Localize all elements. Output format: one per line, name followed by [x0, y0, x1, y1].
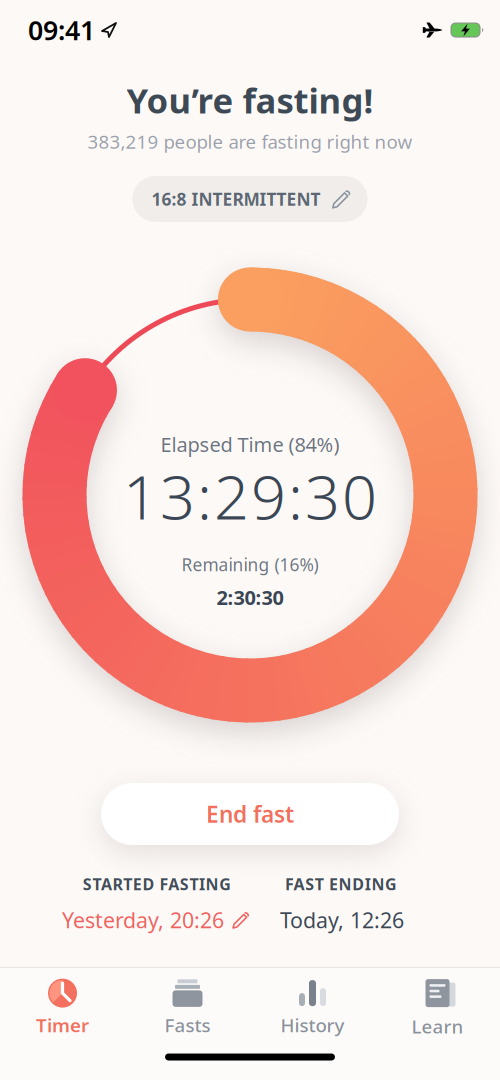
staticText: Learn: [411, 1014, 463, 1039]
button[interactable]: Fasts: [125, 970, 250, 1032]
staticText: FAST ENDING: [285, 873, 397, 895]
button[interactable]: Timer: [0, 970, 125, 1032]
staticText: Fasts: [164, 1013, 210, 1037]
button[interactable]: History: [250, 970, 375, 1032]
staticText: 383,219 people are fasting right now: [87, 129, 412, 154]
staticText: STARTED FASTING: [83, 873, 231, 895]
staticText: Today, 12:26: [280, 906, 404, 934]
staticText: Elapsed Time (84%): [160, 431, 339, 458]
staticText: Yesterday, 20:26: [62, 906, 224, 934]
staticText: History: [280, 1013, 344, 1037]
staticText: 16:8 INTERMITTENT: [151, 187, 320, 210]
staticText: You’re fasting!: [126, 77, 373, 123]
staticText: Remaining (16%): [181, 553, 318, 576]
staticText: 2:30:30: [216, 584, 283, 611]
staticText: 13:29:30: [123, 455, 377, 536]
button[interactable]: Learn: [375, 970, 500, 1032]
staticText: End fast: [206, 799, 294, 829]
button[interactable]: Yesterday, 20:26: [62, 906, 250, 934]
button[interactable]: 16:8 INTERMITTENT: [132, 176, 367, 222]
button[interactable]: End fast: [101, 783, 399, 845]
staticText: Timer: [36, 1013, 89, 1037]
staticText: 09:41: [28, 12, 95, 48]
